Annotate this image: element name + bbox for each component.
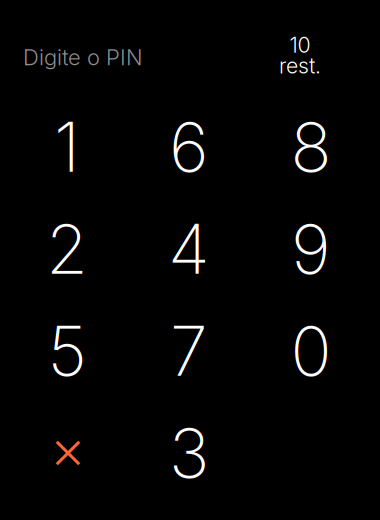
- staticText: 5: [47, 310, 86, 392]
- staticText: 1: [54, 106, 80, 188]
- button[interactable]: 9: [250, 198, 372, 300]
- button[interactable]: 7: [128, 300, 250, 402]
- button[interactable]: 6: [128, 96, 250, 198]
- staticText: 4: [168, 208, 210, 290]
- staticText: 10: [289, 32, 310, 58]
- staticText: 6: [169, 106, 209, 188]
- button[interactable]: 2: [6, 198, 128, 300]
- staticText: 7: [170, 310, 208, 392]
- button[interactable]: 8: [250, 96, 372, 198]
- staticText: 9: [291, 208, 331, 290]
- button[interactable]: 4: [128, 198, 250, 300]
- button[interactable]: 1: [6, 96, 128, 198]
- staticText: 2: [46, 208, 88, 290]
- button[interactable]: 5: [6, 300, 128, 402]
- button[interactable]: Delete: [6, 402, 128, 504]
- staticText: 8: [290, 106, 331, 188]
- staticText: 3: [169, 412, 209, 494]
- staticText: Digite o PIN: [23, 44, 143, 71]
- button[interactable]: 3: [128, 402, 250, 504]
- staticText: rest.: [279, 53, 321, 79]
- staticText: 0: [290, 310, 331, 392]
- button[interactable]: 0: [250, 300, 372, 402]
